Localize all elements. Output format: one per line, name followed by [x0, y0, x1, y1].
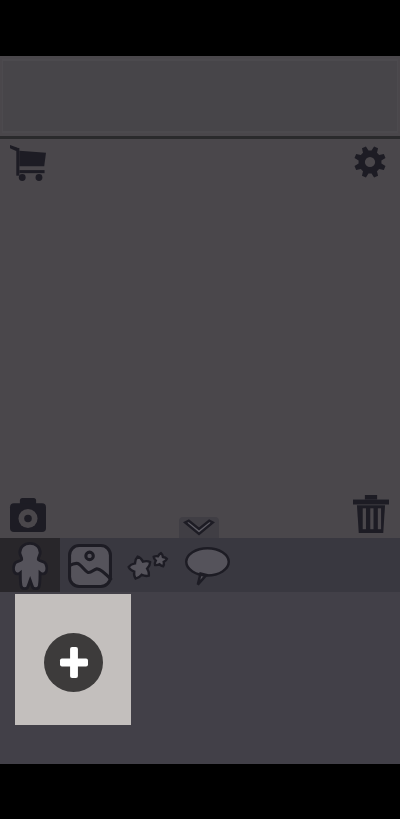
button[interactable]: Settings [344, 139, 400, 189]
button[interactable]: Camera [3, 493, 52, 537]
button[interactable]: Delete [348, 492, 394, 536]
button[interactable]: Stickers [0, 538, 60, 592]
button[interactable]: Add new [15, 594, 131, 725]
button[interactable]: Shop [0, 139, 56, 189]
button[interactable]: Effects [120, 538, 176, 592]
button[interactable]: Photos [60, 538, 120, 592]
button[interactable]: Text [177, 538, 238, 592]
button[interactable]: Collapse [179, 517, 219, 538]
